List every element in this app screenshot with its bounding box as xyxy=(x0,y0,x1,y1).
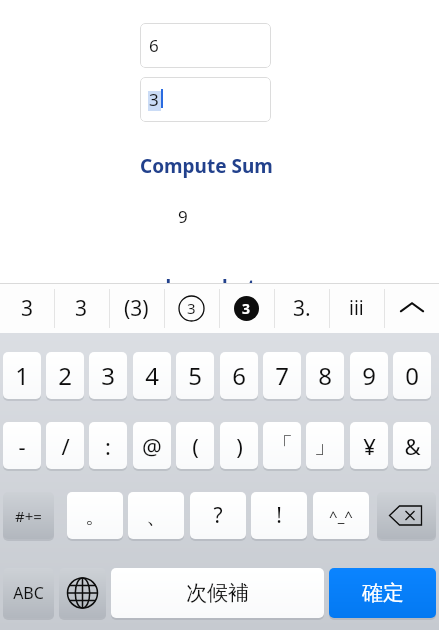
staticText: 確定 xyxy=(362,580,404,606)
staticText: 0 xyxy=(405,359,419,392)
staticText: ^_^ xyxy=(329,506,353,526)
button[interactable] xyxy=(384,284,439,332)
staticText: 3 xyxy=(101,359,115,392)
staticText: 。 xyxy=(85,503,106,529)
staticText: 2 xyxy=(58,359,72,392)
staticText: show alert xyxy=(156,274,256,296)
staticText: 3 xyxy=(149,88,159,111)
staticText: : xyxy=(105,431,111,461)
staticText: 6 xyxy=(232,359,246,392)
button[interactable]: 6 xyxy=(220,352,258,399)
staticText: ) xyxy=(236,431,243,461)
staticText: (3) xyxy=(124,294,149,323)
button[interactable]: iii xyxy=(329,284,384,332)
button[interactable]: 0 xyxy=(393,352,431,399)
button[interactable]: ¥ xyxy=(350,422,388,469)
button[interactable]: 7 xyxy=(263,352,301,399)
staticText: ! xyxy=(276,501,282,530)
button[interactable]: 3 xyxy=(54,284,109,332)
button[interactable]: 3 xyxy=(140,77,271,122)
button[interactable]: 5 xyxy=(176,352,214,399)
button[interactable]: Change keyboard xyxy=(59,568,106,618)
button[interactable]: Compute Sum xyxy=(132,153,280,179)
button[interactable]: 「 xyxy=(263,422,301,469)
button[interactable]: #+= xyxy=(3,492,54,539)
staticText: Compute Sum xyxy=(140,153,273,179)
button[interactable]: 3 xyxy=(0,284,55,332)
button[interactable]: / xyxy=(46,422,84,469)
button[interactable]: 9 xyxy=(350,352,388,399)
button[interactable]: 2 xyxy=(46,352,84,399)
staticText: - xyxy=(18,431,26,461)
button[interactable]: & xyxy=(393,422,431,469)
staticText: 3. xyxy=(293,294,311,323)
staticText: 3 xyxy=(187,298,196,318)
staticText: ABC xyxy=(13,582,44,604)
staticText: 「 xyxy=(271,432,293,460)
button[interactable]: ! xyxy=(251,492,307,539)
button[interactable]: - xyxy=(3,422,41,469)
button[interactable]: 確定 xyxy=(329,568,436,618)
button[interactable]: : xyxy=(89,422,127,469)
button[interactable]: ABC xyxy=(3,568,54,618)
staticText: 5 xyxy=(188,359,202,392)
button[interactable]: 3 xyxy=(164,284,219,332)
staticText: #+= xyxy=(15,506,42,526)
staticText: iii xyxy=(349,295,364,321)
button[interactable]: ^_^ xyxy=(313,492,369,539)
staticText: 9 xyxy=(178,205,188,228)
staticText: 6 xyxy=(149,34,159,57)
button[interactable]: 次候補 xyxy=(111,568,324,618)
button[interactable]: ( xyxy=(176,422,214,469)
button[interactable]: 1 xyxy=(3,352,41,399)
button[interactable]: 」 xyxy=(306,422,344,469)
button[interactable]: 3 xyxy=(219,284,274,332)
staticText: 次候補 xyxy=(186,580,249,606)
staticText: & xyxy=(404,431,421,461)
button[interactable]: show alert xyxy=(152,274,260,296)
button[interactable]: @ xyxy=(133,422,171,469)
button[interactable]: 。 xyxy=(67,492,123,539)
button[interactable]: ) xyxy=(220,422,258,469)
staticText: 7 xyxy=(275,359,289,392)
button[interactable]: Delete xyxy=(377,492,436,539)
staticText: 1 xyxy=(15,359,29,392)
staticText: 」 xyxy=(314,432,336,460)
button[interactable]: 3 xyxy=(89,352,127,399)
staticText: ? xyxy=(213,501,223,530)
button[interactable]: 4 xyxy=(133,352,171,399)
staticText: ¥ xyxy=(363,431,376,461)
button[interactable]: 、 xyxy=(128,492,184,539)
staticText: 9 xyxy=(362,359,376,392)
staticText: 8 xyxy=(318,359,332,392)
staticText: ( xyxy=(192,431,199,461)
button[interactable]: ? xyxy=(190,492,246,539)
staticText: 4 xyxy=(145,359,159,392)
staticText: 3 xyxy=(242,299,251,318)
button[interactable]: (3) xyxy=(109,284,164,332)
staticText: 3 xyxy=(75,294,88,323)
staticText: 、 xyxy=(146,503,167,529)
button[interactable]: 3. xyxy=(274,284,329,332)
staticText: / xyxy=(61,431,70,461)
staticText: @ xyxy=(142,431,162,461)
button[interactable]: 6 xyxy=(140,23,271,68)
button[interactable]: 8 xyxy=(306,352,344,399)
staticText: 3 xyxy=(21,294,34,323)
